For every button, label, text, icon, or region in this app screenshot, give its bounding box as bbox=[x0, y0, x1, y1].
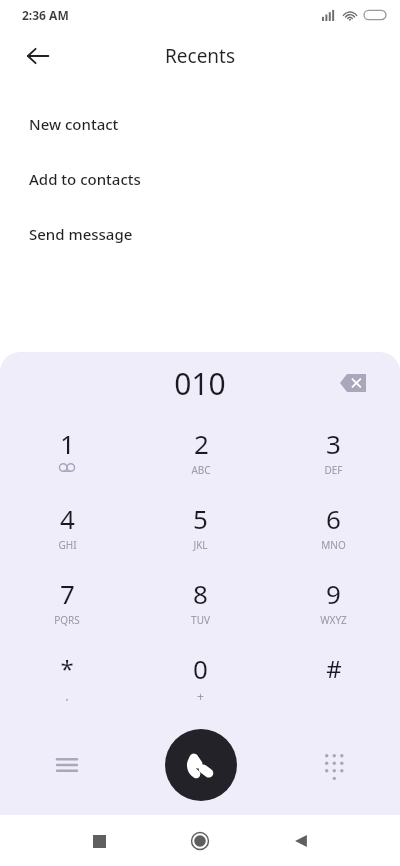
staticText: WXYZ bbox=[320, 613, 347, 627]
button[interactable]: 9 bbox=[267, 564, 400, 639]
button[interactable]: 8 bbox=[134, 564, 267, 639]
button[interactable]: Menu bbox=[43, 741, 91, 789]
button[interactable]: Call bbox=[165, 729, 237, 801]
button[interactable]: 2 bbox=[134, 414, 267, 489]
staticText: 4 bbox=[60, 501, 75, 536]
staticText: 2:36 AM bbox=[22, 7, 69, 23]
staticText: 0 bbox=[193, 651, 208, 686]
staticText: 7 bbox=[60, 576, 75, 611]
button[interactable]: 3 bbox=[267, 414, 400, 489]
button[interactable]: Backspace bbox=[332, 362, 374, 404]
staticText: 6 bbox=[326, 501, 341, 536]
button[interactable]: 4 bbox=[0, 489, 134, 564]
staticText: 3 bbox=[326, 426, 341, 461]
button[interactable]: # bbox=[267, 639, 400, 714]
button[interactable]: Dialpad bbox=[310, 741, 358, 789]
staticText: 9 bbox=[326, 576, 341, 611]
button[interactable]: 1 bbox=[0, 414, 134, 489]
staticText: TUV bbox=[191, 613, 210, 627]
staticText: 5 bbox=[193, 501, 208, 536]
button[interactable]: Back bbox=[14, 32, 62, 80]
staticText: GHI bbox=[58, 538, 77, 552]
button[interactable]: 7 bbox=[0, 564, 134, 639]
button[interactable]: 5 bbox=[134, 489, 267, 564]
button[interactable]: Back bbox=[279, 819, 323, 863]
button[interactable]: Home bbox=[178, 819, 222, 863]
button[interactable]: 0 bbox=[134, 639, 267, 714]
staticText: # bbox=[326, 652, 342, 685]
button[interactable]: Send message bbox=[0, 206, 400, 261]
staticText: DEF bbox=[324, 463, 343, 477]
staticText: ABC bbox=[191, 463, 211, 477]
button[interactable]: * bbox=[0, 639, 134, 714]
button[interactable]: New contact bbox=[0, 96, 400, 151]
staticText: New contact bbox=[29, 114, 119, 134]
button[interactable]: 6 bbox=[267, 489, 400, 564]
staticText: Send message bbox=[29, 224, 133, 244]
staticText: JKL bbox=[193, 538, 208, 552]
staticText: Add to contacts bbox=[29, 169, 141, 189]
staticText: 010 bbox=[174, 363, 226, 404]
staticText: + bbox=[197, 688, 204, 702]
staticText: 2 bbox=[194, 426, 209, 461]
staticText: Recents bbox=[165, 43, 236, 69]
staticText: * bbox=[60, 652, 74, 685]
button[interactable]: Recents bbox=[77, 819, 121, 863]
staticText: 8 bbox=[193, 576, 208, 611]
staticText: 1 bbox=[60, 426, 75, 461]
staticText: , bbox=[65, 687, 69, 701]
button[interactable]: Add to contacts bbox=[0, 151, 400, 206]
staticText: MNO bbox=[321, 538, 346, 552]
staticText: PQRS bbox=[54, 613, 80, 627]
